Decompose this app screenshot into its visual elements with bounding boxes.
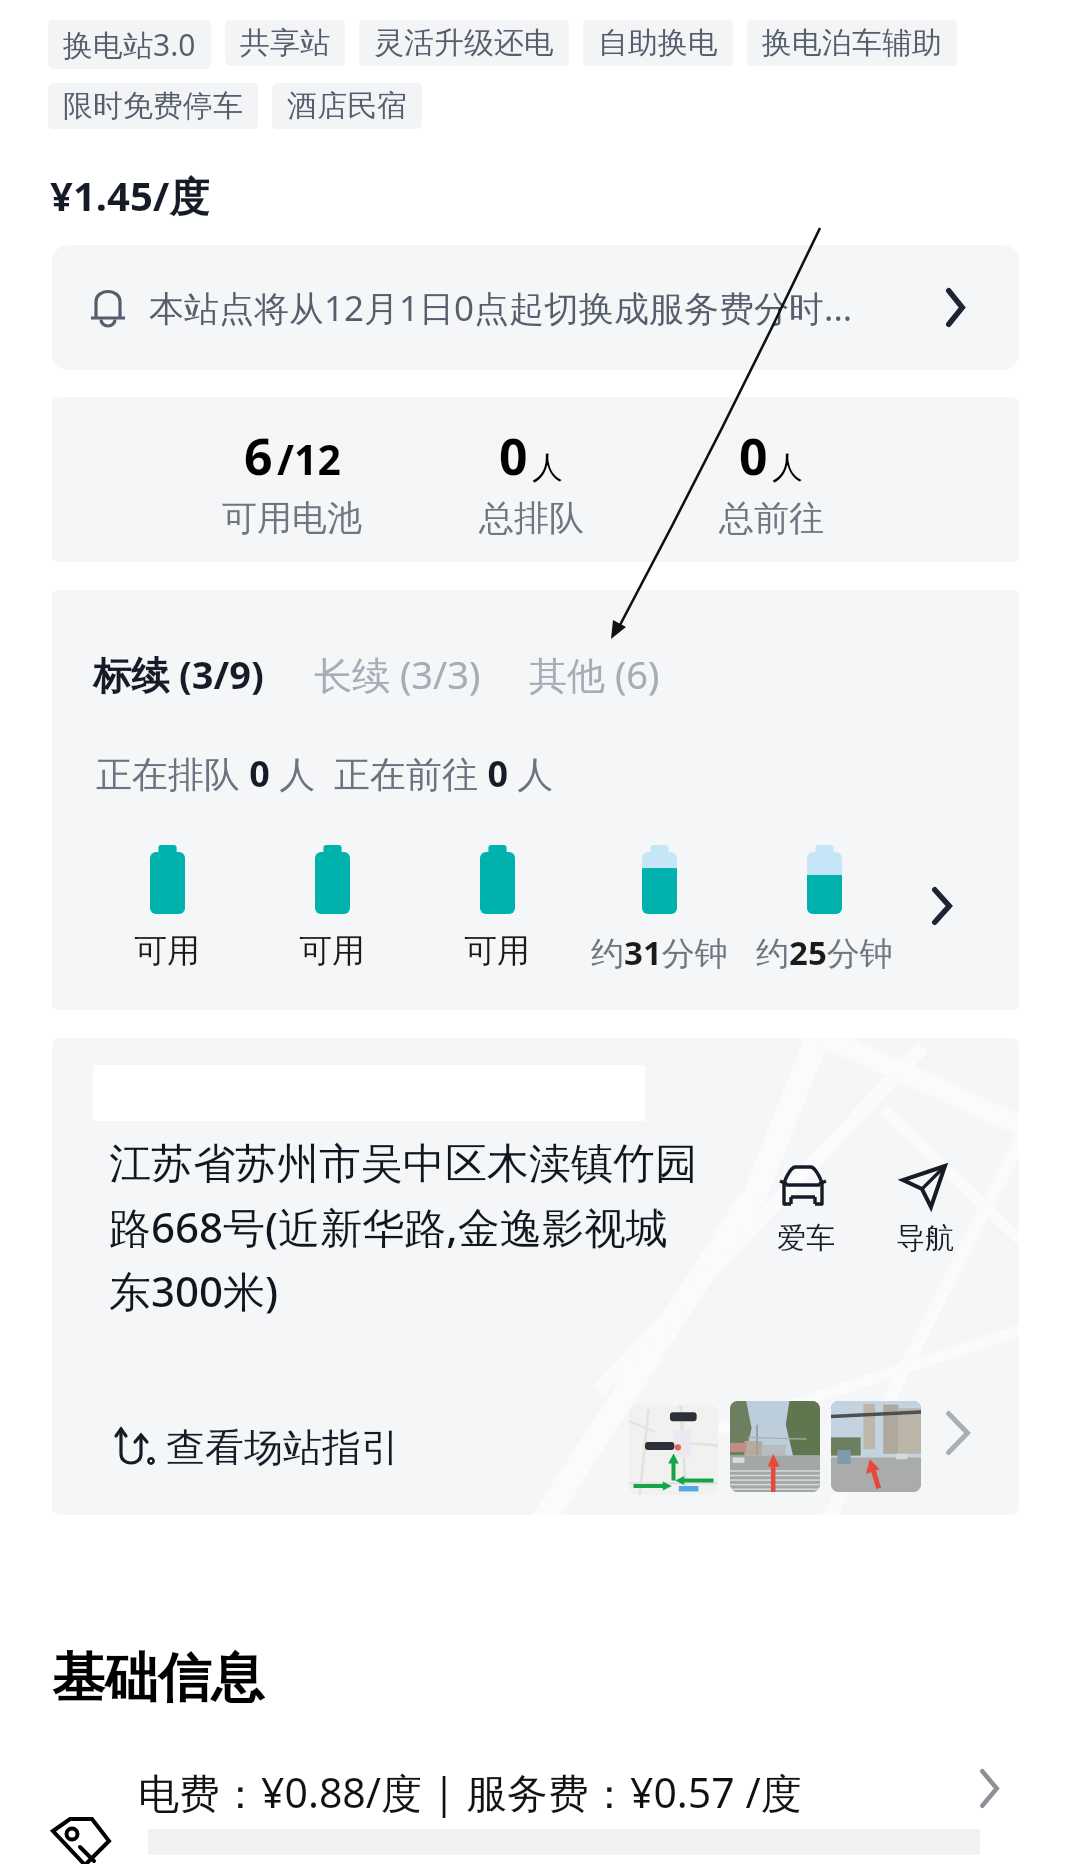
staticText: 0 <box>499 422 528 490</box>
staticText: 导航 <box>896 1220 954 1257</box>
staticText: 可用 <box>299 930 365 972</box>
staticText: 限时免费停车 <box>63 87 243 125</box>
other: 费用详情 <box>980 1769 999 1808</box>
staticText: 正在排队 0 人 正在前往 0 人 <box>96 749 554 798</box>
staticText: 总前往 <box>719 496 824 540</box>
button[interactable]: 换电站3.0 <box>48 20 211 69</box>
button[interactable]: 电费：¥0.88/度 | 服务费：¥0.57 /度 <box>46 1762 1031 1820</box>
staticText: 换电泊车辅助 <box>762 24 942 62</box>
button[interactable]: 本站点将从12月1日0点起切换成服务费分时... <box>52 245 1019 370</box>
staticText: 电费：¥0.88/度 | 服务费：¥0.57 /度 <box>138 1764 802 1820</box>
button[interactable] <box>730 1401 820 1492</box>
staticText: 酒店民宿 <box>287 87 407 125</box>
staticText: 共享站 <box>240 24 330 62</box>
staticText: 查看场站指引 <box>166 1423 400 1472</box>
button[interactable]: 自助换电 <box>583 20 733 66</box>
staticText: 人 <box>772 448 803 487</box>
other: 更多电池 <box>932 887 952 925</box>
staticText: 人 <box>532 448 563 487</box>
button[interactable]: 共享站 <box>225 20 345 66</box>
staticText: 标续 (3/9) <box>93 648 264 700</box>
button[interactable]: 爱车 <box>750 1164 862 1257</box>
staticText: 可用 <box>134 930 200 972</box>
staticText: 江苏省苏州市吴中区木渎镇竹园路668号(近新华路,金逸影视城东300米) <box>109 1138 699 1319</box>
staticText: 0 <box>739 422 768 490</box>
staticText: 基础信息 <box>52 1645 264 1712</box>
button[interactable]: 标续 (3/9) <box>93 638 264 710</box>
button[interactable]: 标续 (3/9) <box>52 590 1019 1010</box>
staticText: 本站点将从12月1日0点起切换成服务费分时... <box>149 284 853 332</box>
staticText: /12 <box>277 431 341 487</box>
button[interactable]: 查看场站指引 <box>116 1423 400 1472</box>
other: 更多图片 <box>946 1411 970 1455</box>
staticText: 其他 (6) <box>529 648 660 700</box>
button[interactable]: 灵活升级还电 <box>359 20 569 66</box>
button[interactable] <box>831 1401 921 1492</box>
button[interactable]: 限时免费停车 <box>48 83 258 129</box>
staticText: 可用电池 <box>222 496 362 540</box>
staticText: 换电站3.0 <box>63 24 196 65</box>
button[interactable]: 长续 (3/3) <box>314 638 481 710</box>
staticText: ¥1.45/度 <box>50 168 210 223</box>
staticText: 自助换电 <box>598 24 718 62</box>
staticText: 总排队 <box>479 496 584 540</box>
staticText: 6 <box>244 422 273 490</box>
button[interactable] <box>629 1405 718 1495</box>
button[interactable]: 酒店民宿 <box>272 83 422 129</box>
staticText: 灵活升级还电 <box>374 24 554 62</box>
staticText: 长续 (3/3) <box>314 648 481 700</box>
button[interactable]: 其他 (6) <box>529 638 660 710</box>
other: 查看公告 <box>946 288 965 327</box>
staticText: 爱车 <box>777 1220 835 1257</box>
staticText: 可用 <box>464 930 530 972</box>
staticText: 约31分钟 <box>591 930 728 975</box>
button[interactable]: 换电泊车辅助 <box>747 20 957 66</box>
button[interactable]: 导航 <box>869 1164 981 1257</box>
staticText: 约25分钟 <box>756 930 893 975</box>
